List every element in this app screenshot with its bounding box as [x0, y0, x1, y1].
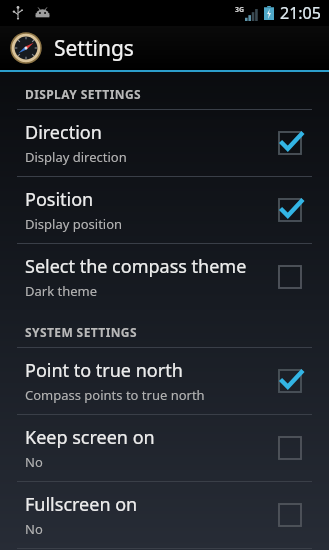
button[interactable]: Unchecked: [275, 262, 305, 292]
button[interactable]: Keep screen on: [0, 415, 329, 481]
staticText: Compass points to true north: [25, 386, 205, 404]
staticText: Point to true north: [25, 358, 183, 383]
staticText: Direction: [25, 120, 102, 145]
button[interactable]: Unchecked: [275, 500, 305, 530]
staticText: Display direction: [25, 148, 127, 166]
button[interactable]: Checked: [275, 366, 305, 396]
staticText: No: [25, 520, 43, 538]
button[interactable]: Unchecked: [275, 433, 305, 463]
staticText: Dark theme: [25, 282, 98, 300]
staticText: Select the compass theme: [25, 254, 247, 279]
staticText: Keep screen on: [25, 425, 155, 450]
staticText: Settings: [54, 34, 134, 63]
staticText: 21:05: [280, 2, 321, 24]
staticText: 3G: [235, 5, 245, 15]
staticText: No: [25, 453, 43, 471]
button[interactable]: Checked: [275, 195, 305, 225]
button[interactable]: Position: [0, 177, 329, 243]
button[interactable]: Fullscreen on: [0, 482, 329, 548]
button[interactable]: Checked: [275, 128, 305, 158]
staticText: Fullscreen on: [25, 492, 138, 517]
staticText: SYSTEM SETTINGS: [25, 324, 137, 340]
button[interactable]: Point to true north: [0, 348, 329, 414]
staticText: Display position: [25, 215, 123, 233]
button[interactable]: Select the compass theme: [0, 244, 329, 310]
button[interactable]: Direction: [0, 110, 329, 176]
staticText: DISPLAY SETTINGS: [25, 86, 141, 102]
staticText: Position: [25, 187, 94, 212]
button[interactable]: Settings: [0, 26, 329, 70]
